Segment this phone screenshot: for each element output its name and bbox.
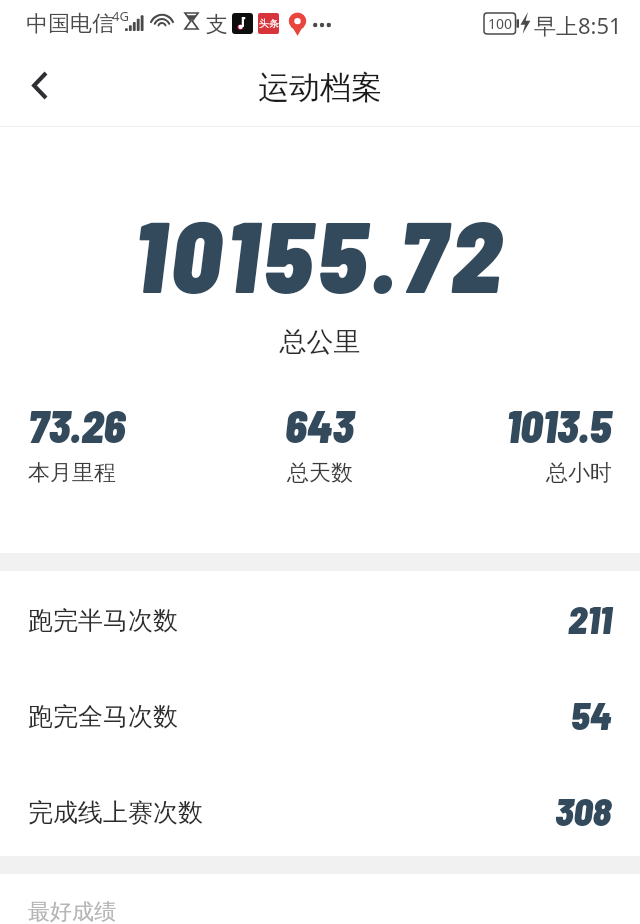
staticText: 211: [568, 596, 612, 642]
button[interactable]: Back: [14, 59, 66, 111]
button[interactable]: 跑完半马次数: [0, 571, 640, 666]
staticText: 10155.72: [0, 193, 640, 313]
staticText: 100: [488, 14, 513, 33]
staticText: 跑完半马次数: [28, 605, 178, 636]
button[interactable]: 跑完全马次数: [0, 667, 640, 762]
staticText: 73.26: [28, 398, 126, 451]
staticText: 跑完全马次数: [28, 701, 178, 732]
staticText: 54: [571, 692, 612, 738]
staticText: 运动档案: [258, 68, 382, 107]
staticText: 中国电信: [26, 10, 114, 38]
staticText: 支: [206, 11, 228, 39]
staticText: 总公里: [0, 325, 640, 359]
staticText: 早上8:51: [534, 10, 622, 40]
staticText: 4G: [112, 7, 129, 25]
staticText: 总小时: [546, 459, 612, 487]
staticText: 本月里程: [28, 459, 116, 487]
staticText: 总天数: [287, 459, 353, 487]
staticText: 643: [285, 398, 354, 451]
staticText: 最好成绩: [28, 898, 116, 924]
staticText: 头条: [259, 17, 279, 30]
staticText: 完成线上赛次数: [28, 797, 203, 828]
staticText: 308: [555, 788, 612, 834]
staticText: 1013.5: [506, 398, 612, 451]
button[interactable]: 完成线上赛次数: [0, 763, 640, 858]
